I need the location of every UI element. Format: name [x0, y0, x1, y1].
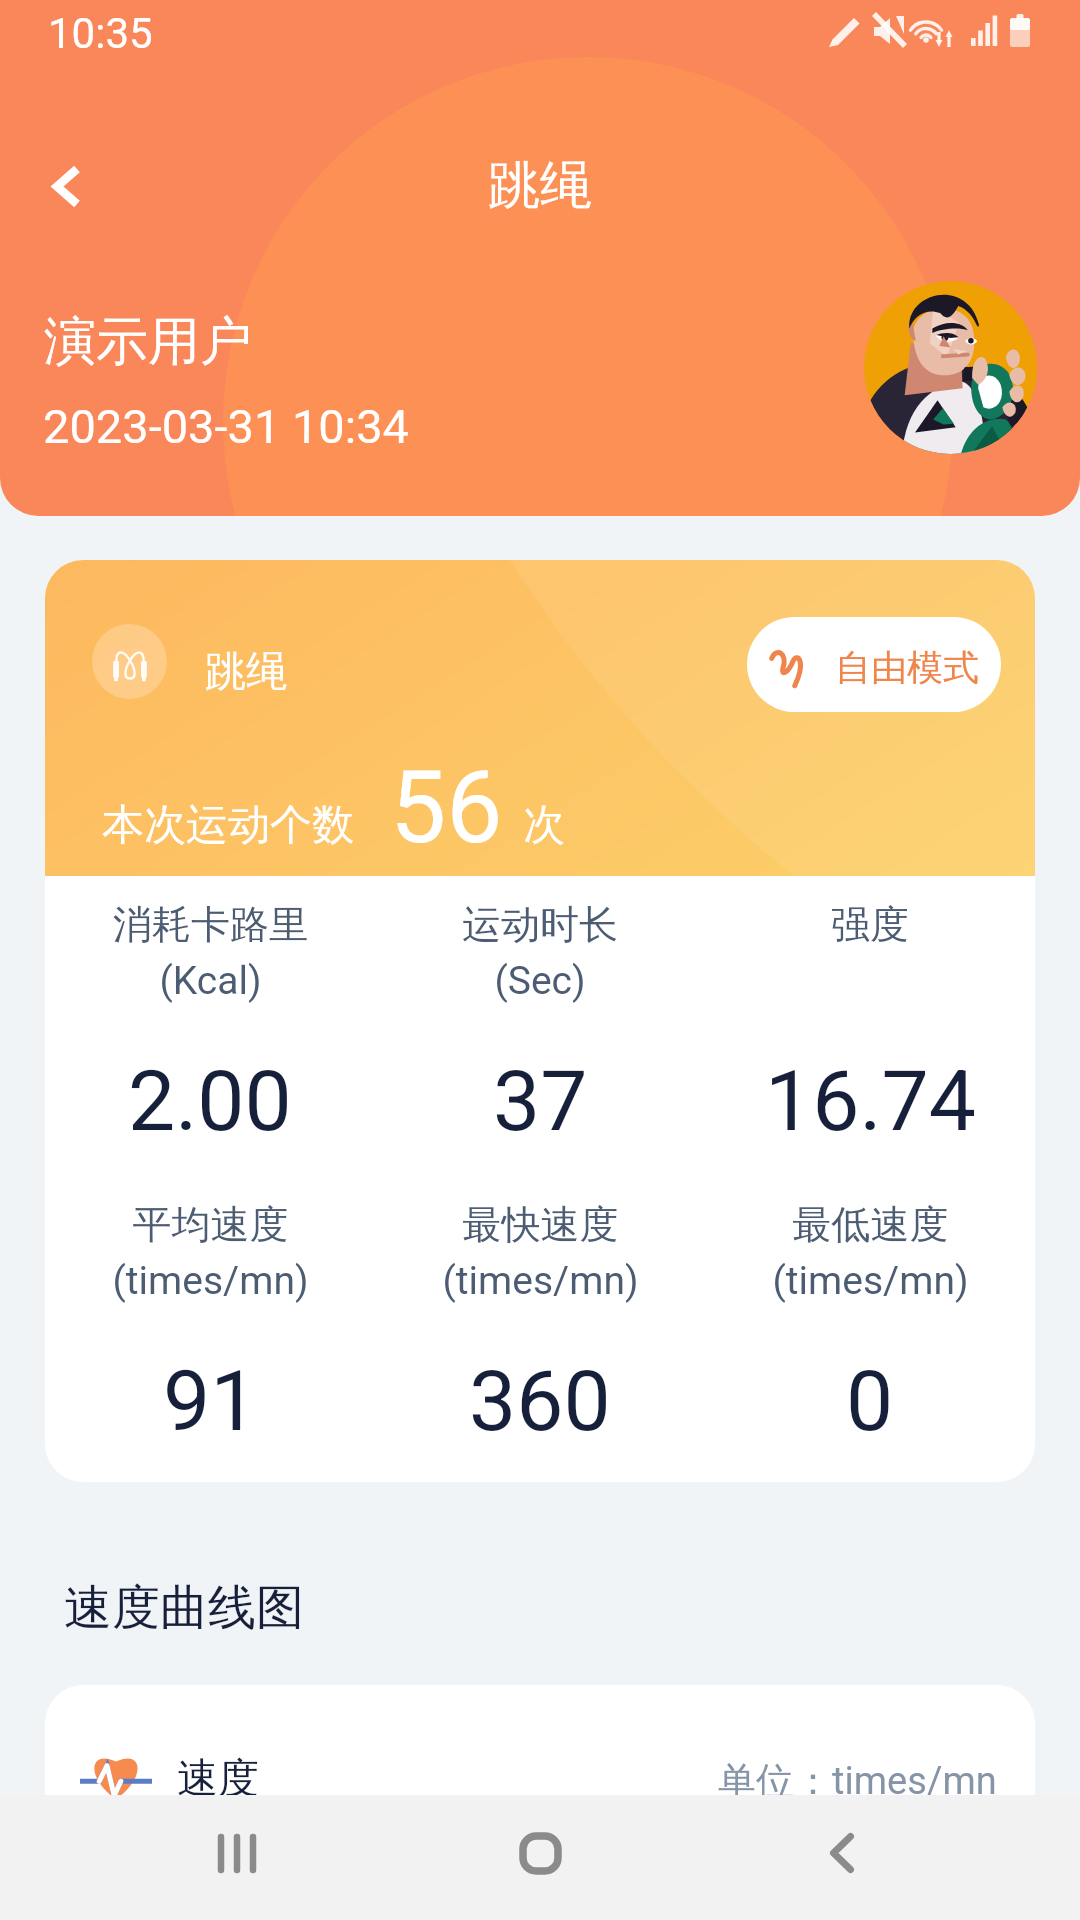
staticText: 平均速度 (times/mn): [112, 1200, 309, 1303]
button[interactable]: Home: [470, 1795, 610, 1911]
staticText: 单位：times/mn: [718, 1757, 997, 1805]
staticText: 速度: [177, 1753, 259, 1805]
staticText: 自由模式: [835, 645, 979, 690]
staticText: 跳绳: [205, 646, 287, 698]
staticText: 360: [469, 1352, 611, 1450]
staticText: 速度曲线图: [64, 1578, 304, 1638]
staticText: 0: [846, 1352, 894, 1450]
staticText: 次: [523, 799, 565, 852]
staticText: 56: [390, 749, 503, 866]
staticText: 2023-03-31 10:34: [43, 399, 409, 454]
button[interactable]: Recent apps: [167, 1795, 307, 1911]
staticText: 最快速度 (times/mn): [442, 1200, 639, 1303]
staticText: 演示用户: [44, 309, 252, 375]
button[interactable]: 自由模式: [747, 617, 1001, 712]
staticText: 强度: [831, 900, 909, 949]
staticText: 本次运动个数: [102, 799, 354, 852]
button[interactable]: Profile: [864, 281, 1037, 454]
staticText: 消耗卡路里 (Kcal): [113, 900, 308, 1003]
staticText: 最低速度 (times/mn): [772, 1200, 969, 1303]
staticText: 37: [493, 1052, 588, 1150]
staticText: 运动时长 (Sec): [462, 900, 618, 1003]
button[interactable]: Back: [0, 106, 104, 218]
staticText: 跳绳: [488, 153, 592, 219]
staticText: 10:35: [48, 9, 153, 58]
staticText: 91: [163, 1352, 258, 1450]
staticText: 16.74: [765, 1052, 976, 1150]
staticText: 2.00: [128, 1052, 292, 1150]
button[interactable]: Back: [772, 1795, 912, 1911]
